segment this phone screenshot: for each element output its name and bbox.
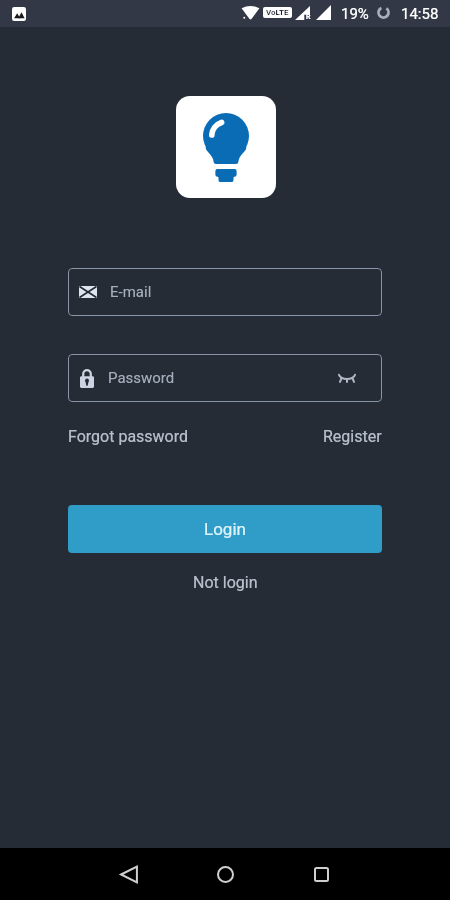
button[interactable]: Show password <box>334 365 360 391</box>
button[interactable]: Forgot password <box>68 424 189 448</box>
button[interactable]: Login <box>68 505 382 553</box>
staticText: 19% <box>341 5 369 23</box>
button[interactable]: Recent apps <box>290 848 352 900</box>
staticText: E-mail <box>110 283 152 301</box>
staticText: VoLTE <box>266 8 289 17</box>
button[interactable]: Not login <box>193 570 258 594</box>
staticText: Password <box>108 369 175 387</box>
staticText: Not login <box>193 573 258 592</box>
button[interactable]: Back <box>98 848 160 900</box>
staticText: Login <box>204 519 246 539</box>
button[interactable]: Register <box>323 424 382 448</box>
staticText: 14:58 <box>401 5 439 23</box>
staticText: R <box>306 13 311 21</box>
button[interactable]: Home <box>194 848 256 900</box>
button[interactable]: E-mail <box>68 268 382 316</box>
button[interactable]: Password <box>68 354 382 402</box>
staticText: Register <box>323 427 382 446</box>
staticText: Forgot password <box>68 427 189 446</box>
